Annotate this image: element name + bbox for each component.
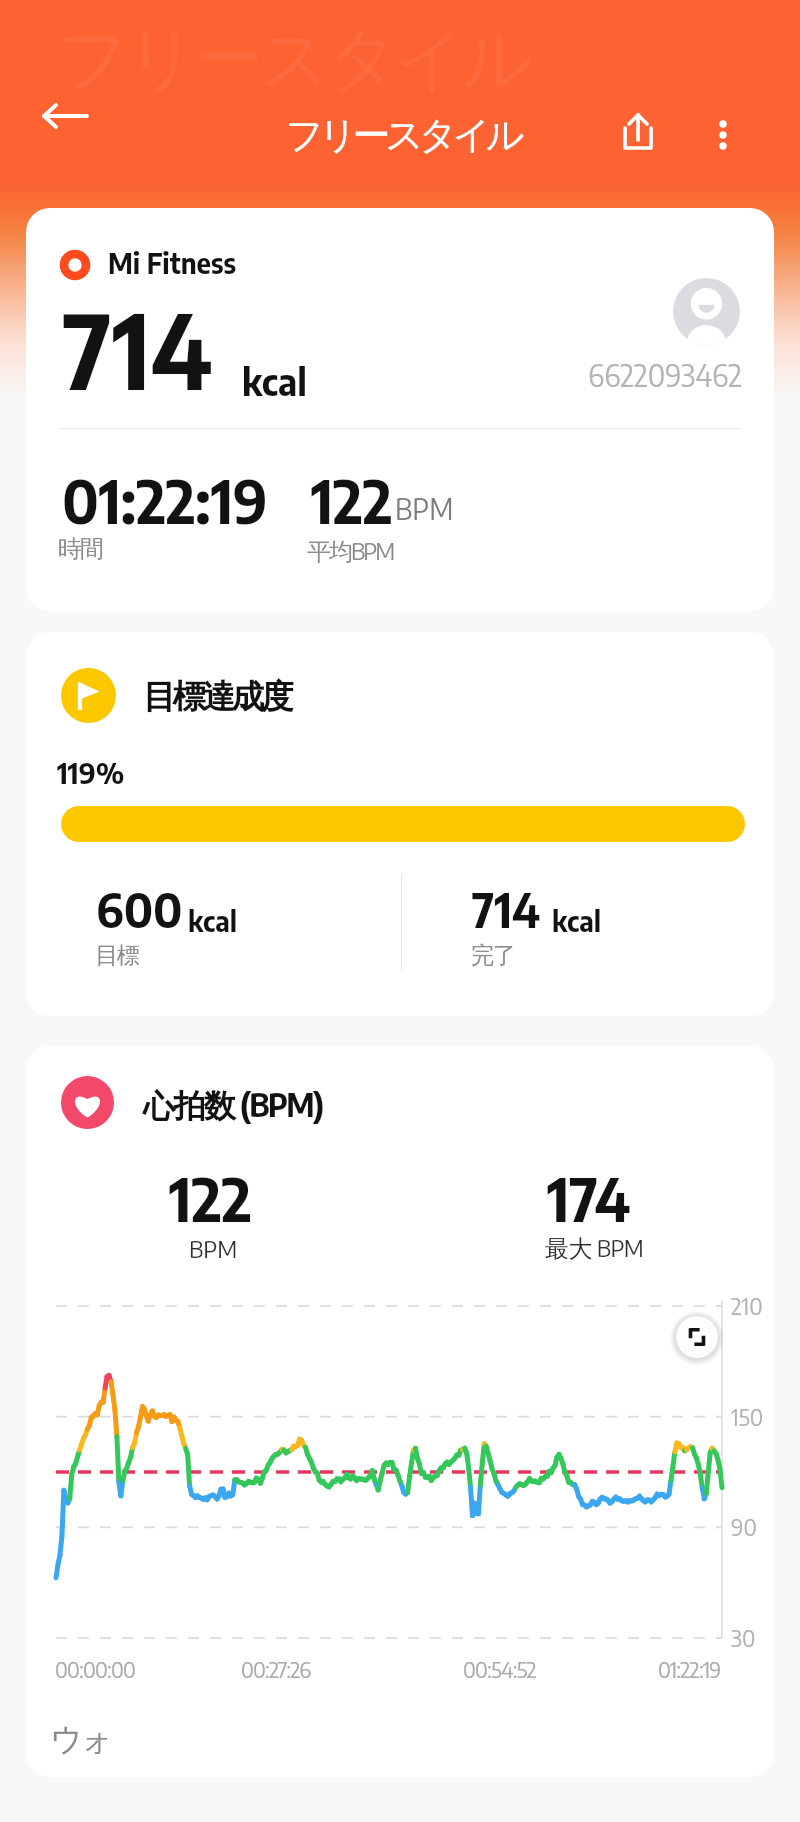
- staticText: 目標: [96, 941, 139, 970]
- staticText: kcal: [552, 903, 602, 938]
- staticText: 210: [731, 1291, 763, 1320]
- staticText: 6622093462: [588, 356, 742, 393]
- button[interactable]: Expand chart: [675, 1315, 719, 1359]
- staticText: 時間: [59, 534, 103, 564]
- button[interactable]: Back: [34, 86, 94, 146]
- staticText: 01:22:19: [62, 463, 268, 537]
- staticText: kcal: [242, 358, 307, 404]
- staticText: 122: [311, 463, 393, 537]
- staticText: 600: [96, 880, 183, 939]
- staticText: 122: [169, 1160, 252, 1235]
- staticText: 174: [547, 1160, 631, 1235]
- staticText: kcal: [188, 903, 238, 938]
- button[interactable]: More options: [693, 105, 753, 165]
- staticText: 90: [731, 1512, 757, 1541]
- staticText: 完了: [472, 941, 515, 970]
- staticText: 714: [472, 880, 541, 939]
- staticText: 119%: [57, 754, 125, 790]
- staticText: 心拍数 (BPM): [143, 1084, 323, 1126]
- staticText: フリースタイル: [285, 111, 520, 159]
- staticText: BPM: [189, 1233, 238, 1263]
- staticText: 目標達成度: [143, 676, 291, 718]
- staticText: 150: [731, 1402, 764, 1431]
- staticText: 00:54:52: [463, 1655, 536, 1683]
- staticText: Mi Fitness: [108, 245, 236, 280]
- staticText: 最大 BPM: [545, 1232, 644, 1264]
- staticText: 00:00:00: [55, 1655, 136, 1683]
- staticText: 30: [731, 1623, 756, 1652]
- staticText: BPM: [395, 490, 454, 526]
- staticText: ウォ ー: [50, 1719, 112, 1777]
- staticText: 平均BPM: [307, 535, 394, 567]
- staticText: 01:22:19: [658, 1655, 721, 1683]
- staticText: 714: [63, 284, 213, 413]
- button[interactable]: Share: [608, 101, 668, 161]
- staticText: フリースタイル: [58, 16, 530, 104]
- staticText: 00:27:26: [241, 1655, 311, 1683]
